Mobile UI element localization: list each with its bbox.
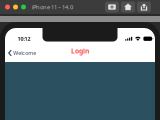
- staticText: iPhone 11 – 14.0: [32, 3, 73, 11]
- button[interactable]: Minimize window: [13, 4, 18, 9]
- button[interactable]: Zoom window: [21, 4, 26, 9]
- button[interactable]: Home: [121, 1, 135, 12]
- button[interactable]: Screenshot: [105, 1, 119, 12]
- staticText: 10:12: [17, 35, 30, 42]
- button[interactable]: Welcome: [5, 47, 36, 59]
- button[interactable]: Share: [137, 1, 151, 12]
- staticText: Welcome: [13, 49, 36, 57]
- staticText: Login: [71, 47, 89, 55]
- button[interactable]: Close window: [5, 4, 10, 9]
